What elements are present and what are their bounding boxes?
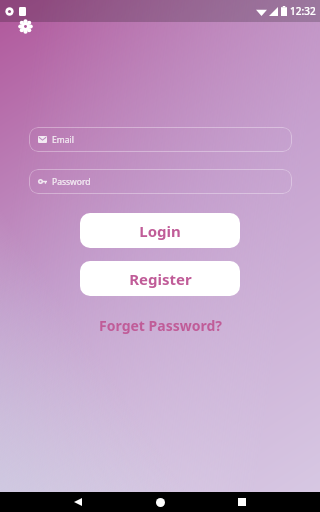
staticText: Forget Password? [99,316,222,335]
staticText: Register [129,269,192,289]
button[interactable]: Forget Password? [89,313,232,338]
button[interactable]: Settings [15,16,35,36]
button[interactable]: Email [29,127,292,152]
staticText: Login [139,221,181,241]
button[interactable]: Back [66,492,90,512]
button[interactable]: Register [80,261,240,296]
staticText: 12:32 [290,4,316,18]
staticText: Email [52,134,74,146]
button[interactable]: Home [148,492,172,512]
button[interactable]: Recent apps [230,492,254,512]
button[interactable]: Login [80,213,240,248]
button[interactable]: Password [29,169,292,194]
staticText: Password [52,176,91,188]
